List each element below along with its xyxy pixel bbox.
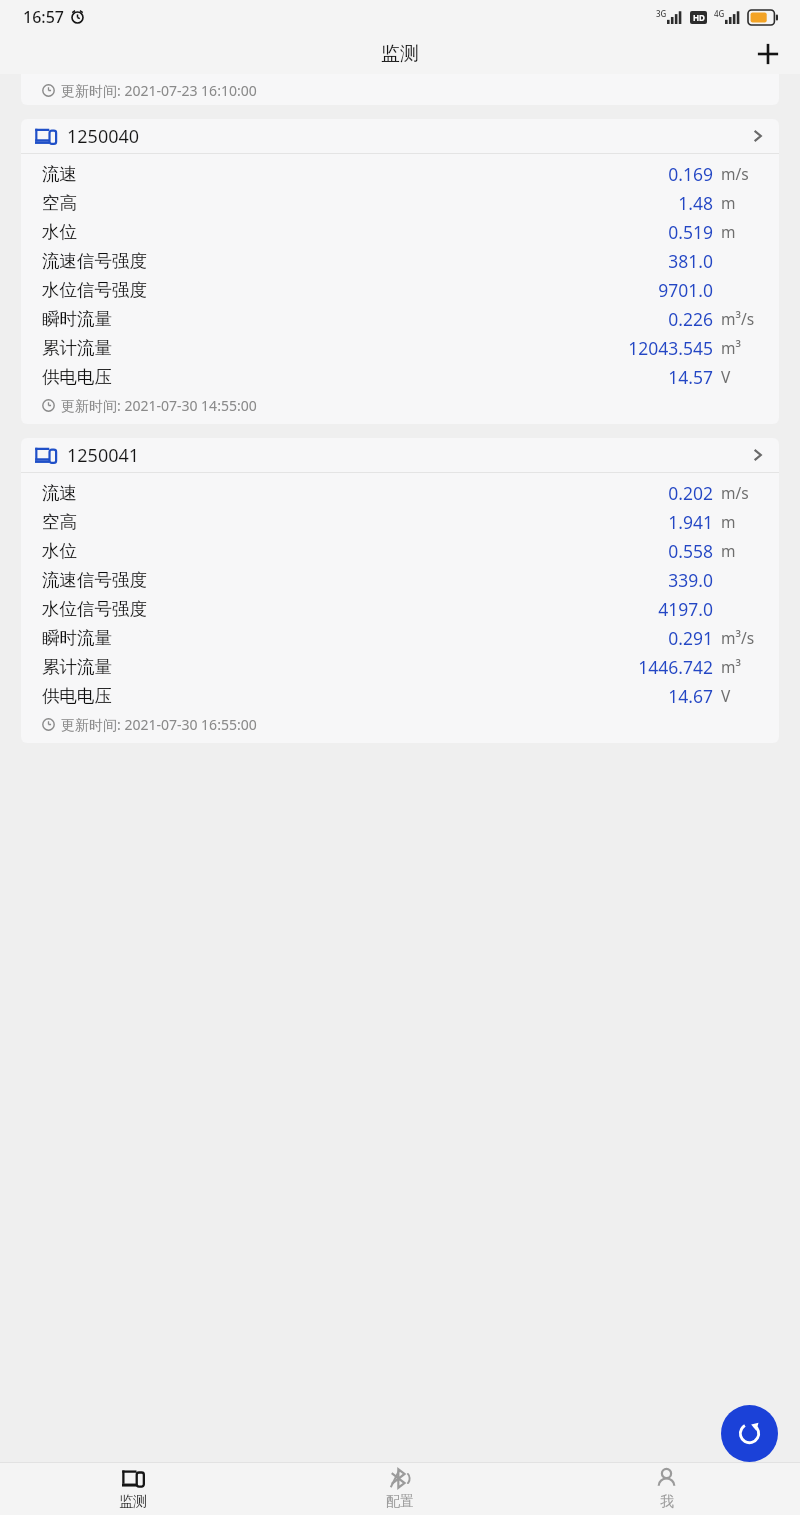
staticText: 流速 (42, 163, 77, 185)
staticText: 监测 (381, 42, 419, 66)
staticText: V (721, 366, 731, 387)
button[interactable]: 监测 (0, 1463, 266, 1515)
staticText: 累计流量 (42, 337, 112, 359)
staticText: 空高 (42, 192, 77, 214)
staticText: m³ (721, 656, 741, 677)
staticText: 0.519 (668, 220, 713, 244)
button[interactable]: 我 (533, 1463, 800, 1515)
staticText: 1.48 (678, 191, 713, 215)
staticText: m (721, 540, 736, 561)
staticText: 0.291 (668, 626, 713, 650)
staticText: 水位信号强度 (42, 598, 147, 620)
staticText: 水位 (42, 540, 77, 562)
staticText: m (721, 511, 736, 532)
staticText: HD (693, 12, 705, 23)
staticText: 供电电压 (42, 366, 112, 388)
button[interactable]: 1250041 (21, 438, 779, 743)
button[interactable]: Add (750, 36, 786, 72)
staticText: 4G (714, 8, 725, 19)
staticText: 3G (656, 8, 667, 19)
staticText: 12043.545 (628, 336, 713, 360)
staticText: m³ (721, 337, 741, 358)
staticText: 9701.0 (658, 278, 713, 302)
staticText: 流速信号强度 (42, 250, 147, 272)
staticText: 0.169 (668, 162, 713, 186)
staticText: 流速信号强度 (42, 569, 147, 591)
staticText: 流速 (42, 482, 77, 504)
button[interactable]: 1250040 (21, 119, 779, 424)
staticText: 1250040 (67, 124, 140, 149)
staticText: 381.0 (668, 249, 713, 273)
staticText: 0.226 (668, 307, 713, 331)
button[interactable]: 配置 (266, 1463, 533, 1515)
button[interactable]: 更新时间: 2021-07-23 16:10:00 (21, 74, 779, 105)
staticText: 14.57 (668, 365, 713, 389)
staticText: m (721, 221, 736, 242)
staticText: 1250041 (67, 443, 140, 468)
staticText: 更新时间: 2021-07-30 16:55:00 (61, 715, 257, 734)
staticText: 水位信号强度 (42, 279, 147, 301)
staticText: 4197.0 (658, 597, 713, 621)
staticText: 更新时间: 2021-07-30 14:55:00 (61, 396, 257, 415)
staticText: 更新时间: 2021-07-23 16:10:00 (61, 81, 257, 100)
staticText: 339.0 (668, 568, 713, 592)
staticText: 16:57 (23, 6, 64, 28)
staticText: m/s (721, 163, 749, 184)
staticText: 0.202 (668, 481, 713, 505)
staticText: 0.558 (668, 539, 713, 563)
staticText: 1.941 (668, 510, 713, 534)
button[interactable]: Refresh (721, 1405, 778, 1462)
staticText: 我 (660, 1493, 674, 1511)
staticText: V (721, 685, 731, 706)
staticText: m³/s (721, 308, 755, 329)
staticText: 瞬时流量 (42, 308, 112, 330)
staticText: m (721, 192, 736, 213)
staticText: 空高 (42, 511, 77, 533)
staticText: 14.67 (668, 684, 713, 708)
staticText: 瞬时流量 (42, 627, 112, 649)
staticText: 供电电压 (42, 685, 112, 707)
staticText: m/s (721, 482, 749, 503)
staticText: 累计流量 (42, 656, 112, 678)
staticText: 监测 (119, 1493, 147, 1511)
staticText: 1446.742 (638, 655, 713, 679)
staticText: 配置 (386, 1493, 414, 1511)
staticText: m³/s (721, 627, 755, 648)
staticText: 水位 (42, 221, 77, 243)
